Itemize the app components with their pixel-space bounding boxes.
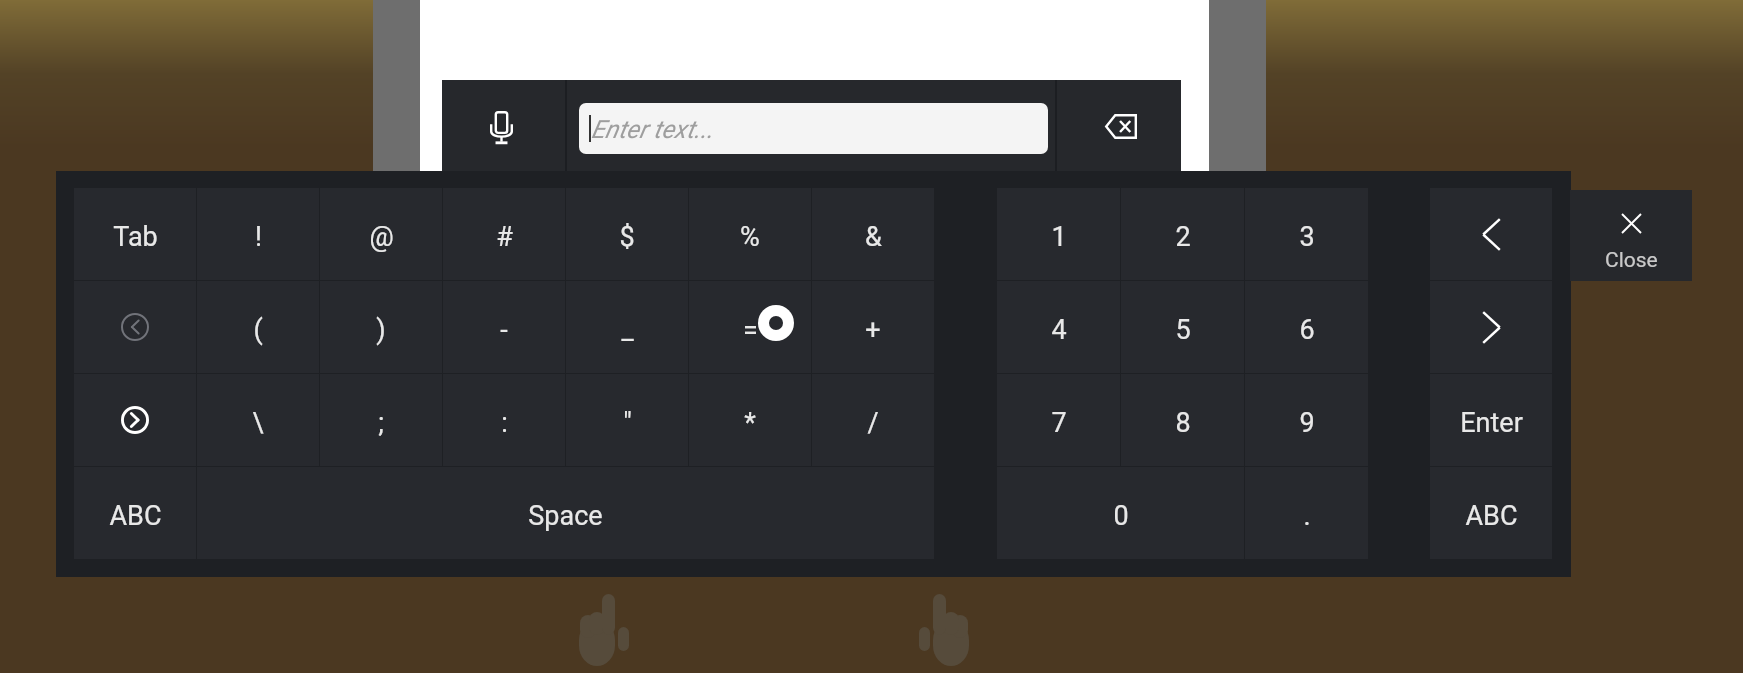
button[interactable]: Space xyxy=(197,467,934,559)
staticText: Tab xyxy=(113,221,158,253)
button[interactable]: 2 xyxy=(1121,188,1244,280)
staticText: # xyxy=(496,221,513,253)
button[interactable]: : xyxy=(443,374,565,466)
button[interactable]: 4 xyxy=(997,281,1120,373)
button[interactable]: ABC xyxy=(74,467,196,559)
button[interactable]: 0 xyxy=(997,467,1244,559)
button[interactable]: Close xyxy=(1570,190,1692,281)
button[interactable]: ( xyxy=(197,281,319,373)
staticText: \ xyxy=(252,407,264,439)
button[interactable]: ; xyxy=(320,374,442,466)
button[interactable]: 1 xyxy=(997,188,1120,280)
button[interactable]: Backspace xyxy=(1057,80,1181,178)
staticText: ( xyxy=(253,314,263,346)
button[interactable]: Enter xyxy=(1430,374,1552,466)
staticText: & xyxy=(865,221,882,253)
button[interactable]: % xyxy=(689,188,811,280)
staticText: 3 xyxy=(1299,221,1315,253)
staticText: % xyxy=(740,221,760,253)
staticText: 1 xyxy=(1051,221,1067,253)
button[interactable]: Enter text... xyxy=(579,103,1048,154)
staticText: _ xyxy=(621,314,634,346)
staticText: Space xyxy=(528,500,603,532)
button[interactable]: 9 xyxy=(1245,374,1368,466)
button[interactable]: Move cursor left xyxy=(1430,188,1552,280)
button[interactable]: 6 xyxy=(1245,281,1368,373)
staticText: 4 xyxy=(1051,314,1067,346)
staticText: ! xyxy=(255,221,262,253)
staticText: 8 xyxy=(1175,407,1191,439)
button[interactable]: Previous xyxy=(74,281,196,373)
button[interactable]: " xyxy=(566,374,688,466)
staticText: 2 xyxy=(1175,221,1191,253)
staticText: 5 xyxy=(1175,314,1191,346)
staticText: : xyxy=(501,407,508,439)
staticText: Enter xyxy=(1460,407,1523,439)
staticText: = xyxy=(743,314,758,346)
staticText: ) xyxy=(376,314,386,346)
staticText: 7 xyxy=(1051,407,1067,439)
staticText: / xyxy=(867,407,879,439)
staticText: " xyxy=(623,407,632,439)
button[interactable]: Move cursor right xyxy=(1430,281,1552,373)
staticText: @ xyxy=(369,221,394,253)
button[interactable]: . xyxy=(1245,467,1368,559)
staticText: 6 xyxy=(1299,314,1315,346)
button[interactable]: ! xyxy=(197,188,319,280)
staticText: 0 xyxy=(1113,500,1129,532)
button[interactable]: + xyxy=(812,281,934,373)
button[interactable]: $ xyxy=(566,188,688,280)
button[interactable]: Tab xyxy=(74,188,196,280)
button[interactable]: Next xyxy=(74,374,196,466)
button[interactable]: ABC xyxy=(1430,467,1552,559)
button[interactable]: 5 xyxy=(1121,281,1244,373)
staticText: $ xyxy=(619,221,635,253)
staticText: . xyxy=(1303,500,1311,532)
button[interactable]: _ xyxy=(566,281,688,373)
staticText: Enter text... xyxy=(591,115,714,144)
button[interactable]: Voice input xyxy=(442,80,565,178)
button[interactable]: / xyxy=(812,374,934,466)
staticText: ABC xyxy=(109,500,162,532)
button[interactable]: - xyxy=(443,281,565,373)
button[interactable]: \ xyxy=(197,374,319,466)
button[interactable]: 8 xyxy=(1121,374,1244,466)
button[interactable]: @ xyxy=(320,188,442,280)
staticText: - xyxy=(500,314,508,346)
button[interactable]: 3 xyxy=(1245,188,1368,280)
staticText: ; xyxy=(378,407,384,439)
staticText: Close xyxy=(1605,248,1658,273)
staticText: ABC xyxy=(1465,500,1518,532)
button[interactable]: * xyxy=(689,374,811,466)
staticText: 9 xyxy=(1299,407,1315,439)
staticText: + xyxy=(865,314,881,346)
button[interactable]: = xyxy=(689,281,811,373)
button[interactable]: 7 xyxy=(997,374,1120,466)
button[interactable]: & xyxy=(812,188,934,280)
button[interactable]: ) xyxy=(320,281,442,373)
staticText: * xyxy=(744,407,756,439)
button[interactable]: # xyxy=(443,188,565,280)
